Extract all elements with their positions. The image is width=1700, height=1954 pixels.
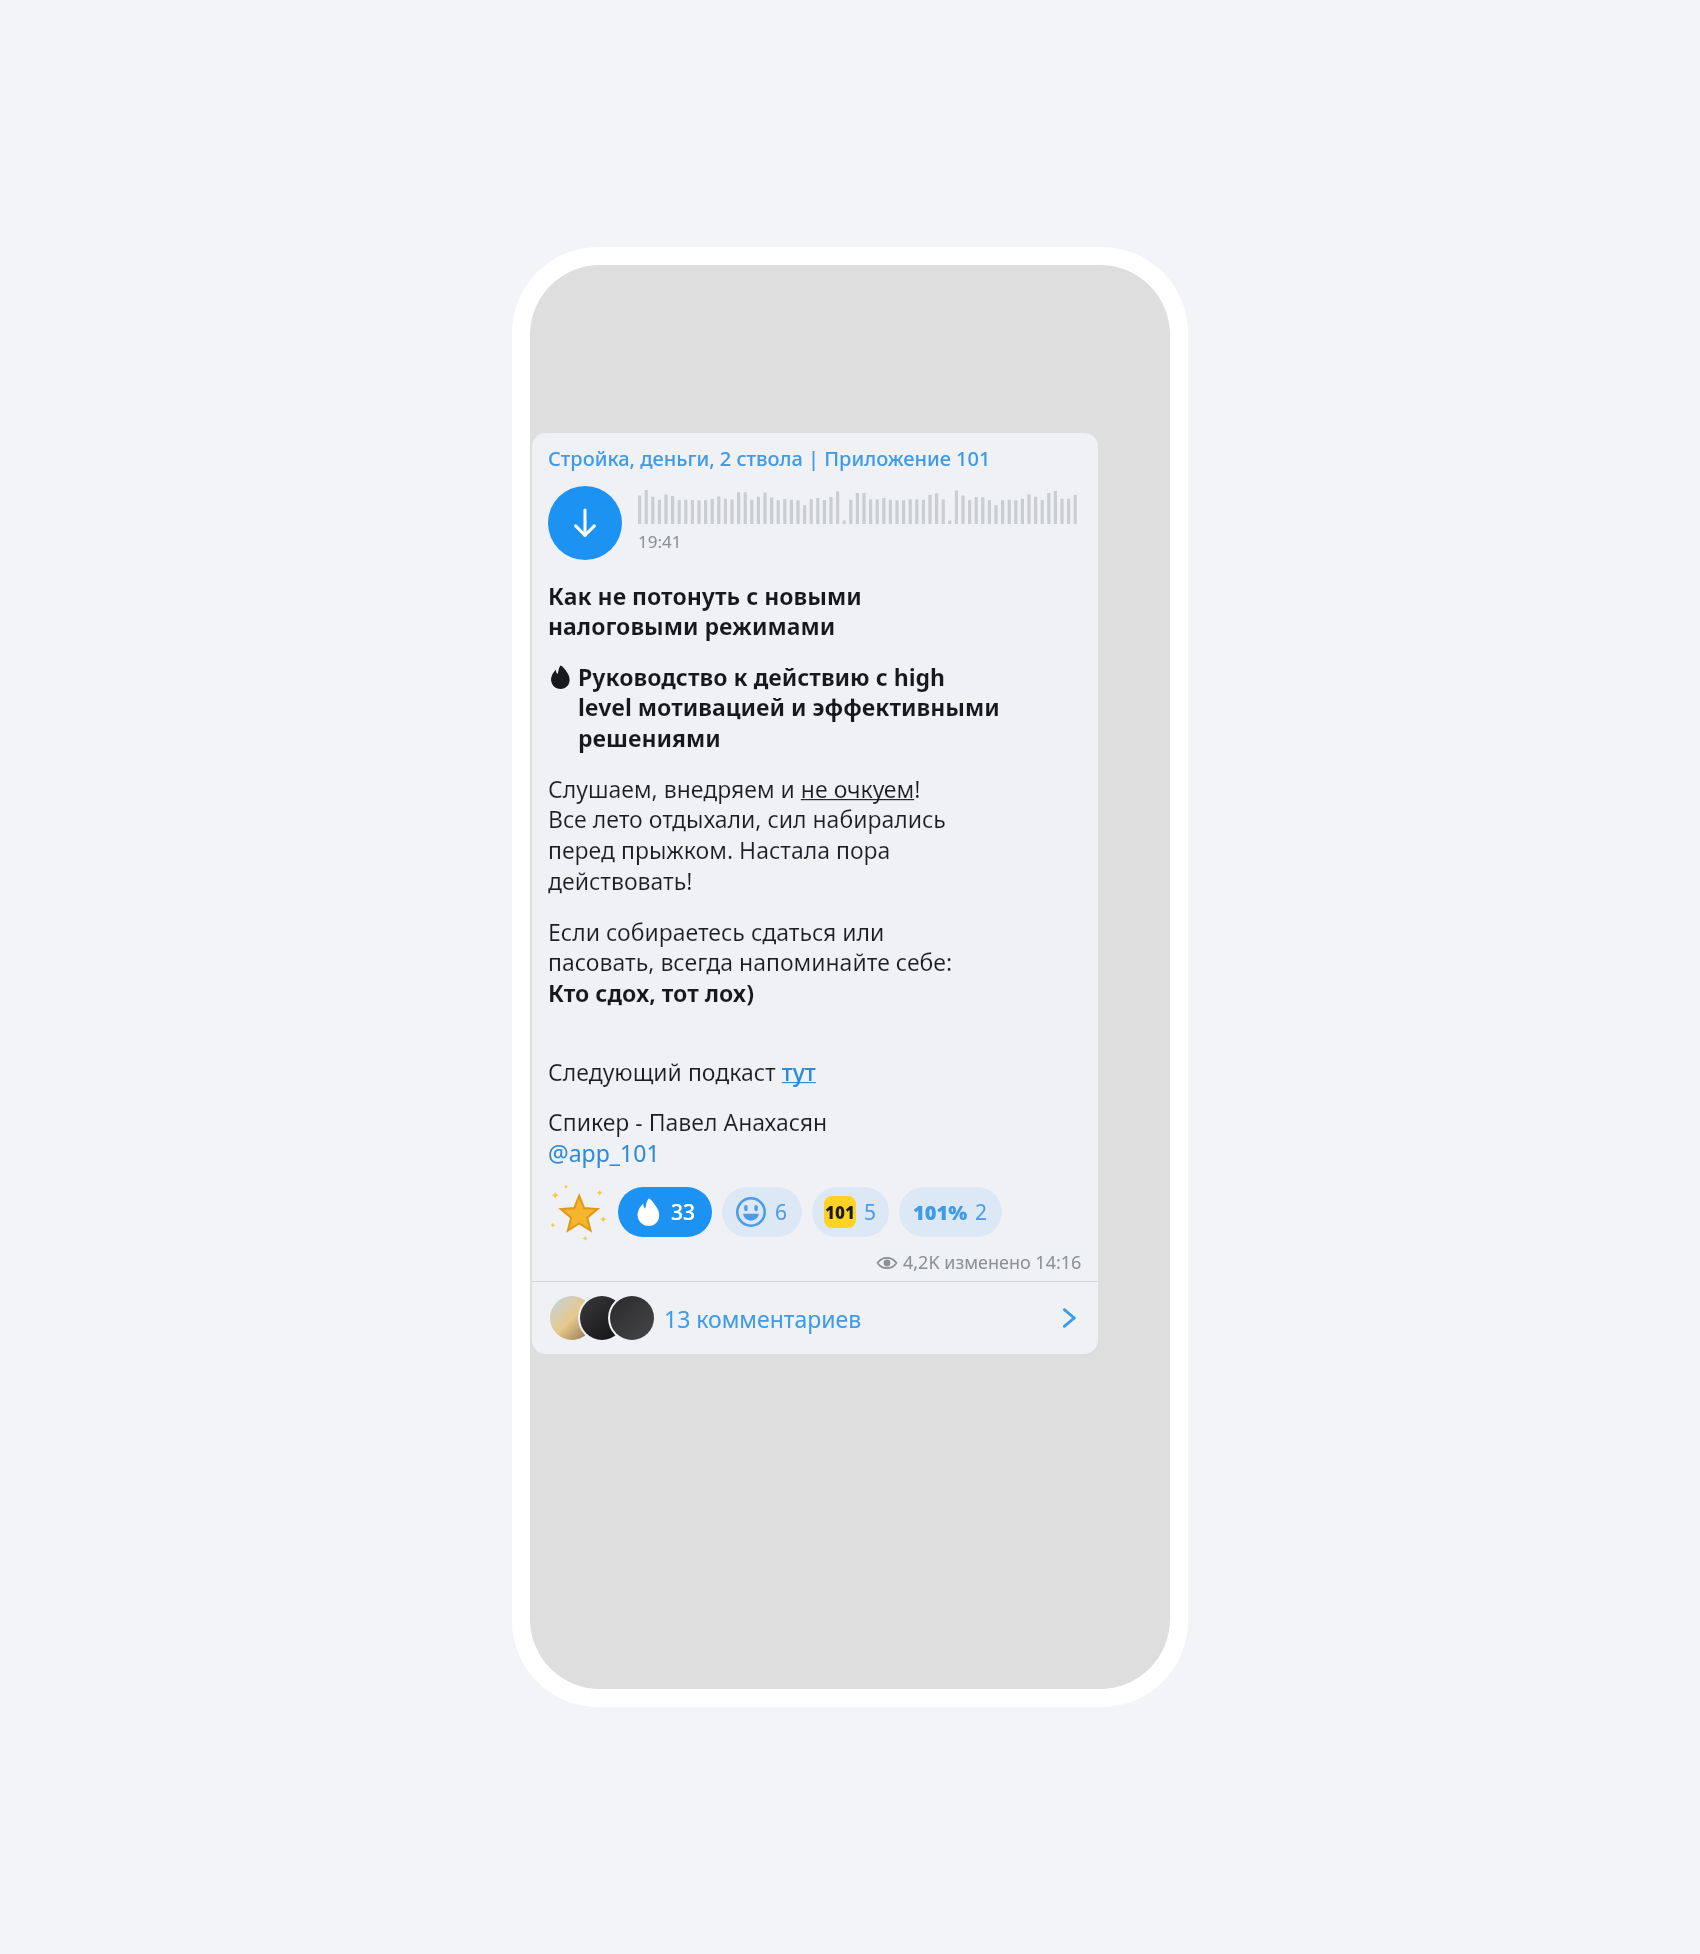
button[interactable]: @app_101: [548, 1137, 660, 1168]
staticText: 6: [775, 1198, 788, 1227]
staticText: Слушаем, внедряем и не очкуем! Все лето …: [548, 773, 946, 897]
button[interactable]: 101: [812, 1187, 889, 1237]
button[interactable]: 13 комментариев: [532, 1282, 1098, 1354]
button[interactable]: 6: [722, 1187, 802, 1237]
staticText: 33: [671, 1198, 696, 1227]
staticText: Как не потонуть с новыми налоговыми режи…: [548, 580, 862, 642]
staticText: Руководство к действию с high level моти…: [578, 661, 1000, 754]
staticText: Спикер - Павел Анахасян: [548, 1106, 828, 1137]
staticText: 13 комментариев: [664, 1303, 862, 1334]
button[interactable]: Следующий подкаст тут: [548, 1056, 816, 1087]
other: Open comments: [1056, 1305, 1082, 1331]
staticText: 5: [864, 1198, 877, 1227]
staticText: 4,2K изменено 14:16: [903, 1250, 1082, 1275]
staticText: 2: [975, 1198, 988, 1227]
button[interactable]: Download audio: [548, 486, 622, 560]
button[interactable]: 101%: [899, 1187, 1002, 1237]
staticText: 101: [825, 1201, 855, 1224]
staticText: Если собираетесь сдаться или пасовать, в…: [548, 916, 953, 1009]
button[interactable]: Star reaction: [548, 1182, 608, 1242]
staticText: 19:41: [638, 530, 682, 553]
button[interactable]: 33: [618, 1187, 712, 1237]
staticText: 101%: [913, 1199, 968, 1226]
button[interactable]: Стройка, деньги, 2 ствола | Приложение 1…: [548, 445, 991, 472]
